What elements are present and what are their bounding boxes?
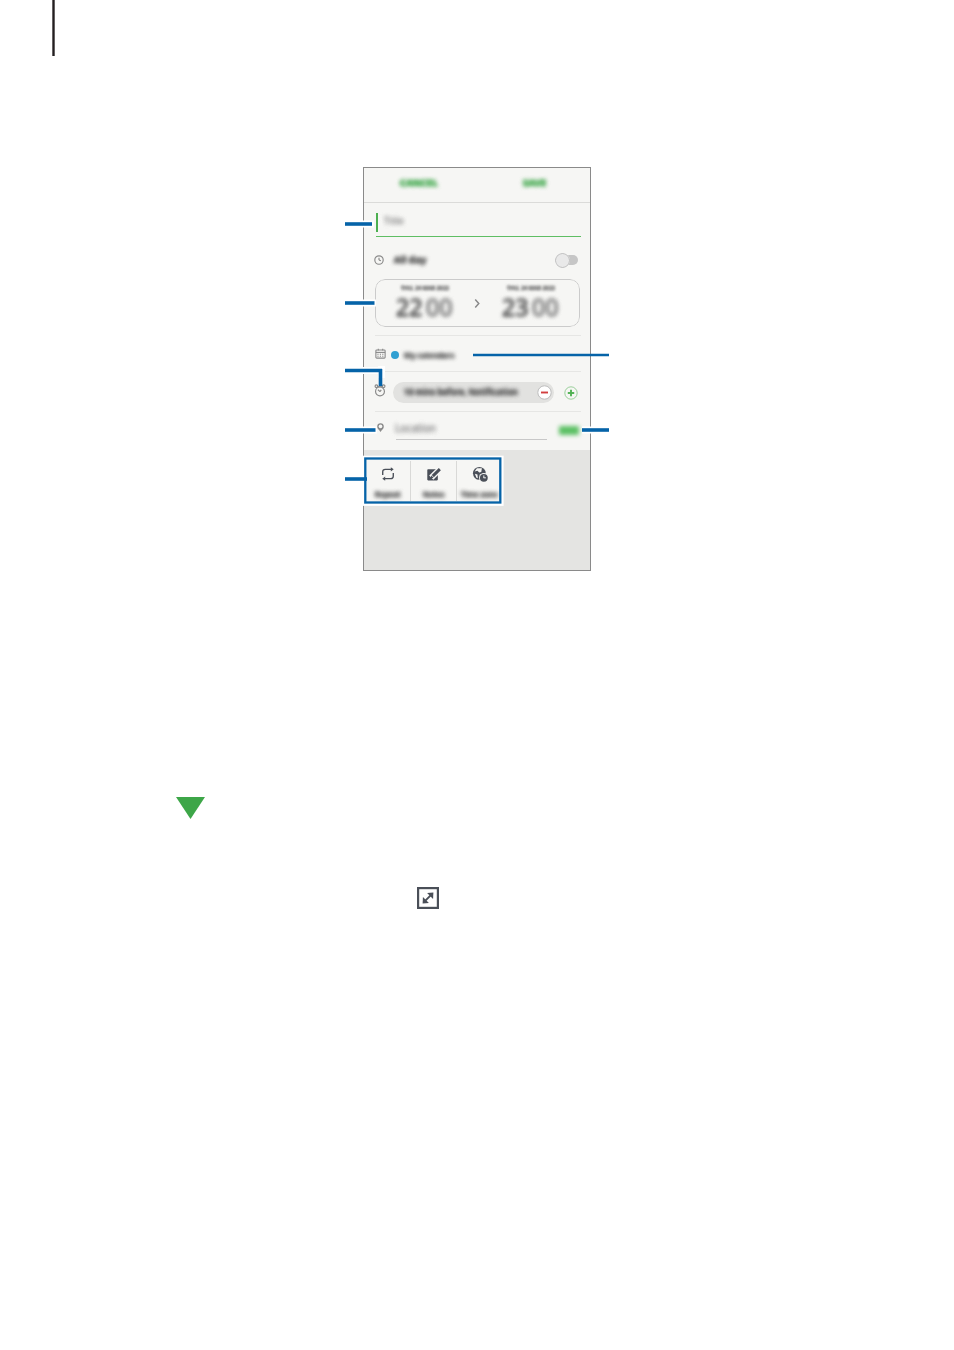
staticText: Time zone xyxy=(461,489,498,499)
button[interactable]: Notes xyxy=(411,457,456,505)
button[interactable]: Time zone xyxy=(457,457,502,505)
staticText: 22 xyxy=(396,291,423,322)
staticText: CANCEL xyxy=(400,176,438,189)
staticText: THU, 24 MAR 2022 xyxy=(507,284,555,291)
button[interactable]: Expand xyxy=(417,887,439,909)
staticText: 00 xyxy=(532,291,559,322)
staticText: Title xyxy=(384,214,404,227)
button[interactable]: Location xyxy=(395,421,525,441)
staticText: Repeat xyxy=(375,489,401,499)
button[interactable]: THU, 24 MAR 2022 xyxy=(375,279,580,327)
staticText: 00 xyxy=(532,291,559,322)
button[interactable]: Remove reminder xyxy=(537,385,552,400)
staticText: Notes xyxy=(423,489,445,499)
staticText: 23 xyxy=(502,291,529,322)
button[interactable] xyxy=(363,339,591,370)
staticText: 10 mins before, Notification xyxy=(404,386,518,397)
button[interactable] xyxy=(363,205,591,237)
staticText: 00 xyxy=(426,291,453,322)
staticText: THU, 24 MAR 2022 xyxy=(401,284,449,291)
staticText: 10 mins before, Notification xyxy=(404,386,518,397)
staticText: Location xyxy=(395,421,436,435)
button[interactable]: Repeat xyxy=(365,457,410,505)
staticText: Location xyxy=(395,421,436,435)
staticText: THU, 24 MAR 2022 xyxy=(507,284,555,291)
staticText: 00 xyxy=(426,291,453,322)
staticText: Notes xyxy=(423,489,445,499)
button[interactable]: Map xyxy=(555,421,582,439)
staticText: 22 xyxy=(396,291,423,322)
staticText: THU, 24 MAR 2022 xyxy=(401,284,449,291)
button[interactable]: 10 mins before, Notification xyxy=(393,382,554,403)
staticText: Repeat xyxy=(375,489,401,499)
staticText: All day xyxy=(394,253,427,266)
staticText: My calendars xyxy=(404,350,455,360)
staticText: All day xyxy=(394,253,427,266)
staticText: 23 xyxy=(502,291,529,322)
button[interactable]: Add reminder xyxy=(564,386,578,400)
staticText: My calendars xyxy=(404,350,455,360)
staticText: CANCEL xyxy=(400,176,438,189)
staticText: Title xyxy=(384,214,404,227)
button[interactable]: CANCEL xyxy=(396,172,442,193)
button[interactable]: SAVE xyxy=(519,172,551,193)
staticText: Time zone xyxy=(461,489,498,499)
staticText: SAVE xyxy=(523,176,547,189)
button[interactable] xyxy=(363,247,591,273)
staticText: SAVE xyxy=(523,176,547,189)
